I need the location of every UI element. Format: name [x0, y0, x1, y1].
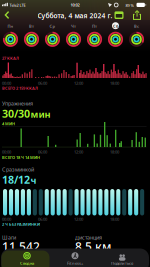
- staticText: Tele2 LTE: [9, 3, 25, 8]
- staticText: 30/30: [2, 106, 30, 121]
- button[interactable]: Fitness+: [55, 251, 95, 267]
- staticText: Ср: [49, 24, 55, 29]
- button[interactable]: Назад: [0, 0, 14, 22]
- staticText: Поделиться: [111, 260, 133, 266]
- staticText: Чт: [71, 24, 76, 29]
- staticText: Вт: [29, 24, 34, 29]
- staticText: 18:00: [110, 149, 119, 155]
- button[interactable]: Пт: [84, 22, 105, 49]
- button[interactable]: Календарь: [114, 11, 123, 19]
- staticText: С разминкой: [2, 166, 34, 173]
- staticText: 18/12: [2, 172, 30, 187]
- staticText: 11 542: [2, 239, 40, 254]
- button[interactable]: Сб: [105, 22, 126, 49]
- staticText: 4 МИН: [2, 121, 15, 126]
- staticText: Суббота, 4 мая 2024 г.: [37, 11, 112, 20]
- staticText: 06:00: [38, 80, 47, 86]
- button[interactable]: Поделиться: [100, 251, 144, 267]
- staticText: Шаги: [2, 234, 16, 241]
- button[interactable]: Поделиться: [133, 11, 141, 20]
- staticText: Пт: [92, 24, 97, 29]
- staticText: 18:00: [110, 216, 119, 222]
- button[interactable]: Сводка: [3, 251, 51, 267]
- staticText: 10:02: [70, 2, 79, 7]
- staticText: ВСЕГО 18 Ч 14 МИН: [2, 155, 40, 160]
- staticText: 18:00: [110, 80, 119, 86]
- staticText: Вс: [134, 24, 139, 29]
- staticText: ч: [30, 174, 36, 186]
- staticText: Дистанция: [75, 234, 102, 241]
- button[interactable]: Вс: [126, 22, 147, 49]
- button[interactable]: Вт: [21, 22, 42, 49]
- staticText: 12:00: [74, 216, 83, 222]
- staticText: 06:00: [38, 216, 47, 222]
- staticText: Сб: [113, 24, 118, 29]
- staticText: ВСЕГО 2 159 ККАЛ: [2, 85, 38, 91]
- button[interactable]: Чт: [63, 22, 84, 49]
- staticText: Fitness+: [67, 260, 83, 266]
- staticText: 00:00: [2, 216, 11, 222]
- staticText: Упражнения: [2, 100, 33, 107]
- staticText: 00:00: [2, 149, 11, 155]
- staticText: 2 Ч БЕЗ РАЗМИНКИ: [2, 221, 40, 227]
- staticText: Пн: [7, 24, 13, 29]
- staticText: 89 %: [125, 3, 133, 8]
- staticText: 27 ККАЛ: [2, 55, 19, 61]
- button[interactable]: Пн: [0, 22, 21, 49]
- staticText: Сводка: [20, 261, 34, 266]
- staticText: 12:00: [74, 149, 83, 155]
- staticText: мин: [30, 108, 50, 120]
- staticText: 06:00: [38, 149, 47, 155]
- staticText: 8,5 км: [75, 239, 111, 254]
- staticText: 00:00: [2, 80, 11, 86]
- staticText: 12:00: [74, 80, 83, 86]
- button[interactable]: Ср: [42, 22, 63, 49]
